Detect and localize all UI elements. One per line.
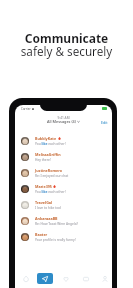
button[interactable]: Marie395 [15, 181, 112, 197]
button[interactable]: TravelGal [15, 197, 112, 213]
staticText: Re: How Toast Were Angela? [35, 222, 78, 226]
staticText: You like each other! [35, 190, 66, 194]
button[interactable]: JustineRomero [15, 165, 112, 181]
button[interactable]: AnkaraaaBB [15, 213, 112, 229]
button[interactable]: Edit [101, 120, 108, 125]
staticText: Hey there! [35, 158, 51, 162]
staticText: BubblyKate [35, 136, 57, 141]
staticText: Carrier [21, 107, 31, 111]
staticText: safely & securely [0, 43, 133, 59]
button[interactable]: Profile [99, 273, 111, 285]
button[interactable]: Likes [60, 273, 72, 285]
staticText: Baxter [35, 232, 48, 237]
button[interactable]: BubblyKate [15, 133, 112, 149]
staticText: JustineRomero [35, 168, 63, 173]
staticText: Your profile is really funny! [35, 238, 76, 242]
staticText: Re: I enjoyed our chat [35, 174, 69, 178]
button[interactable]: Messages [37, 273, 53, 284]
staticText: I love to hike too! [35, 206, 62, 210]
staticText: MelissaGriffin [35, 152, 61, 157]
button[interactable]: MelissaGriffin [15, 149, 112, 165]
staticText: AnkaraaaBB [35, 216, 58, 221]
staticText: You like each other! [35, 142, 66, 146]
button[interactable]: All Messages (4) [47, 119, 80, 124]
staticText: 9:41 AM [15, 116, 112, 120]
button[interactable]: Baxter [15, 229, 112, 245]
staticText: Edit [101, 120, 108, 125]
staticText: All Messages (4) [47, 119, 76, 124]
staticText: TravelGal [35, 200, 53, 205]
button[interactable]: Matches [80, 273, 92, 285]
button[interactable]: Home [20, 273, 32, 285]
staticText: Communicate [0, 30, 133, 46]
staticText: Marie395 [35, 184, 52, 189]
